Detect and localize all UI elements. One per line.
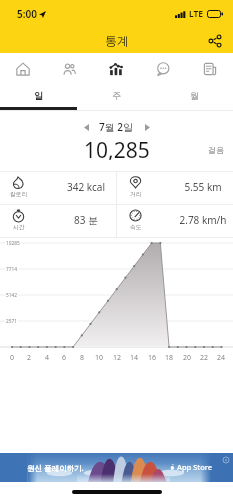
staticText: 10 (93, 353, 105, 363)
button[interactable]: Previous day (77, 118, 95, 136)
button[interactable]: 시간 (0, 205, 116, 237)
staticText: 2.78 km/h (172, 213, 233, 227)
staticText: 14 (128, 353, 140, 363)
staticText: 24 (215, 353, 227, 363)
staticText: 6 (58, 353, 70, 363)
button[interactable]: 일 (0, 83, 77, 110)
staticText: 칼로리 (10, 190, 28, 197)
button[interactable]: 주 (77, 83, 155, 110)
staticText: 2571 (6, 318, 17, 325)
staticText: 342 kcal (55, 180, 117, 194)
button[interactable]: Ad information (223, 457, 229, 463)
button[interactable]: 원신 플레이하기. (0, 453, 233, 482)
staticText: 20 (181, 353, 193, 363)
button[interactable]: 속도 (117, 205, 233, 237)
staticText: LTE (189, 8, 204, 20)
staticText: 5:00 (17, 7, 37, 21)
staticText: 2 (23, 353, 35, 363)
button[interactable]: Chat (139, 53, 186, 83)
button[interactable]: Share (203, 29, 227, 53)
staticText: 5.55 km (172, 180, 233, 194)
button[interactable]: Statistics (92, 53, 139, 83)
button[interactable]: 월 (155, 83, 233, 110)
staticText: 16 (146, 353, 158, 363)
staticText: 22 (198, 353, 210, 363)
button[interactable]: Home (0, 53, 46, 83)
staticText: 통계 (105, 33, 129, 48)
staticText: 7월 2일 (99, 120, 134, 134)
button[interactable]: Next day (138, 118, 156, 136)
staticText: 걸음 (208, 145, 224, 155)
button[interactable]: Friends (46, 53, 92, 83)
staticText: 10,285 (84, 136, 150, 160)
staticText: 속도 (130, 223, 142, 230)
button[interactable]: News (186, 53, 233, 83)
button[interactable]: 거리 (117, 172, 233, 204)
staticText: 일 (34, 90, 43, 101)
staticText: 5142 (6, 292, 17, 299)
staticText: 월 (190, 90, 199, 101)
staticText: 10285 (6, 240, 20, 247)
staticText: 거리 (130, 190, 142, 197)
button[interactable]: 칼로리 (0, 172, 116, 204)
staticText: 원신 플레이하기. (27, 463, 84, 473)
staticText: 7714 (6, 266, 17, 273)
staticText: 주 (112, 90, 121, 101)
staticText: 18 (163, 353, 175, 363)
staticText: App Store (177, 462, 213, 472)
staticText: 4 (41, 353, 53, 363)
staticText: 12 (111, 353, 123, 363)
staticText: 0 (6, 353, 18, 363)
staticText: 83 분 (55, 213, 117, 227)
staticText: 시간 (13, 223, 25, 230)
staticText: 8 (76, 353, 88, 363)
